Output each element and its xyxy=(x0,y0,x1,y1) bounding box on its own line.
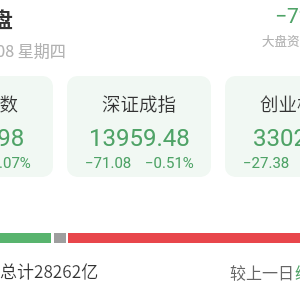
staticText: 创业板指 xyxy=(260,90,300,117)
staticText: 深证成指 xyxy=(102,90,177,117)
staticText: 两市成交总计28262亿 xyxy=(0,258,99,283)
staticText: 3302.52 xyxy=(253,124,300,152)
staticText: 12-08 星期四 xyxy=(0,38,66,61)
staticText: −72.08 xyxy=(275,4,300,29)
staticText: 缩量 xyxy=(295,260,300,283)
button[interactable]: 创业板指 xyxy=(225,76,300,177)
staticText: −0.07% xyxy=(0,154,31,172)
staticText: 13959.48 xyxy=(89,124,190,152)
staticText: −27.38 xyxy=(243,154,290,172)
staticText: −71.08 xyxy=(85,154,132,172)
staticText: 较上一日 xyxy=(230,260,295,283)
staticText: 大盘资金流向 xyxy=(262,31,300,49)
staticText: −0.51% xyxy=(145,154,194,172)
staticText: 今日收盘 xyxy=(0,3,13,33)
staticText: 上证指数 xyxy=(0,90,19,117)
button[interactable]: 上证指数 xyxy=(0,76,53,177)
button[interactable]: 深证成指 xyxy=(67,76,211,177)
staticText: 3199.98 xyxy=(0,124,25,152)
